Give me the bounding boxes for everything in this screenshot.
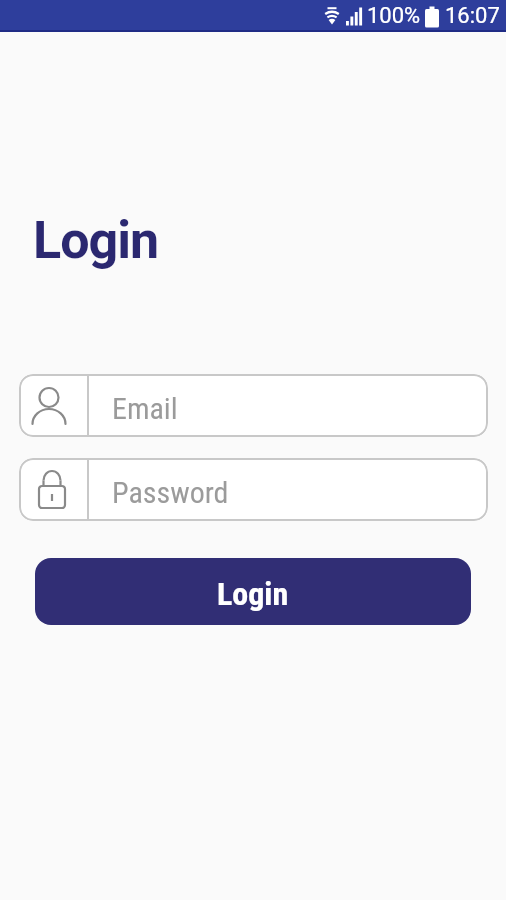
staticText: Login bbox=[33, 210, 159, 271]
staticText: 16:07 bbox=[445, 3, 500, 29]
staticText: Email bbox=[112, 391, 178, 426]
staticText: Password bbox=[112, 475, 229, 510]
staticText: Login bbox=[217, 575, 289, 613]
button[interactable]: Password bbox=[19, 458, 488, 521]
button[interactable]: Login bbox=[35, 558, 471, 625]
button[interactable]: Email bbox=[19, 374, 488, 437]
staticText: 100% bbox=[367, 3, 421, 29]
